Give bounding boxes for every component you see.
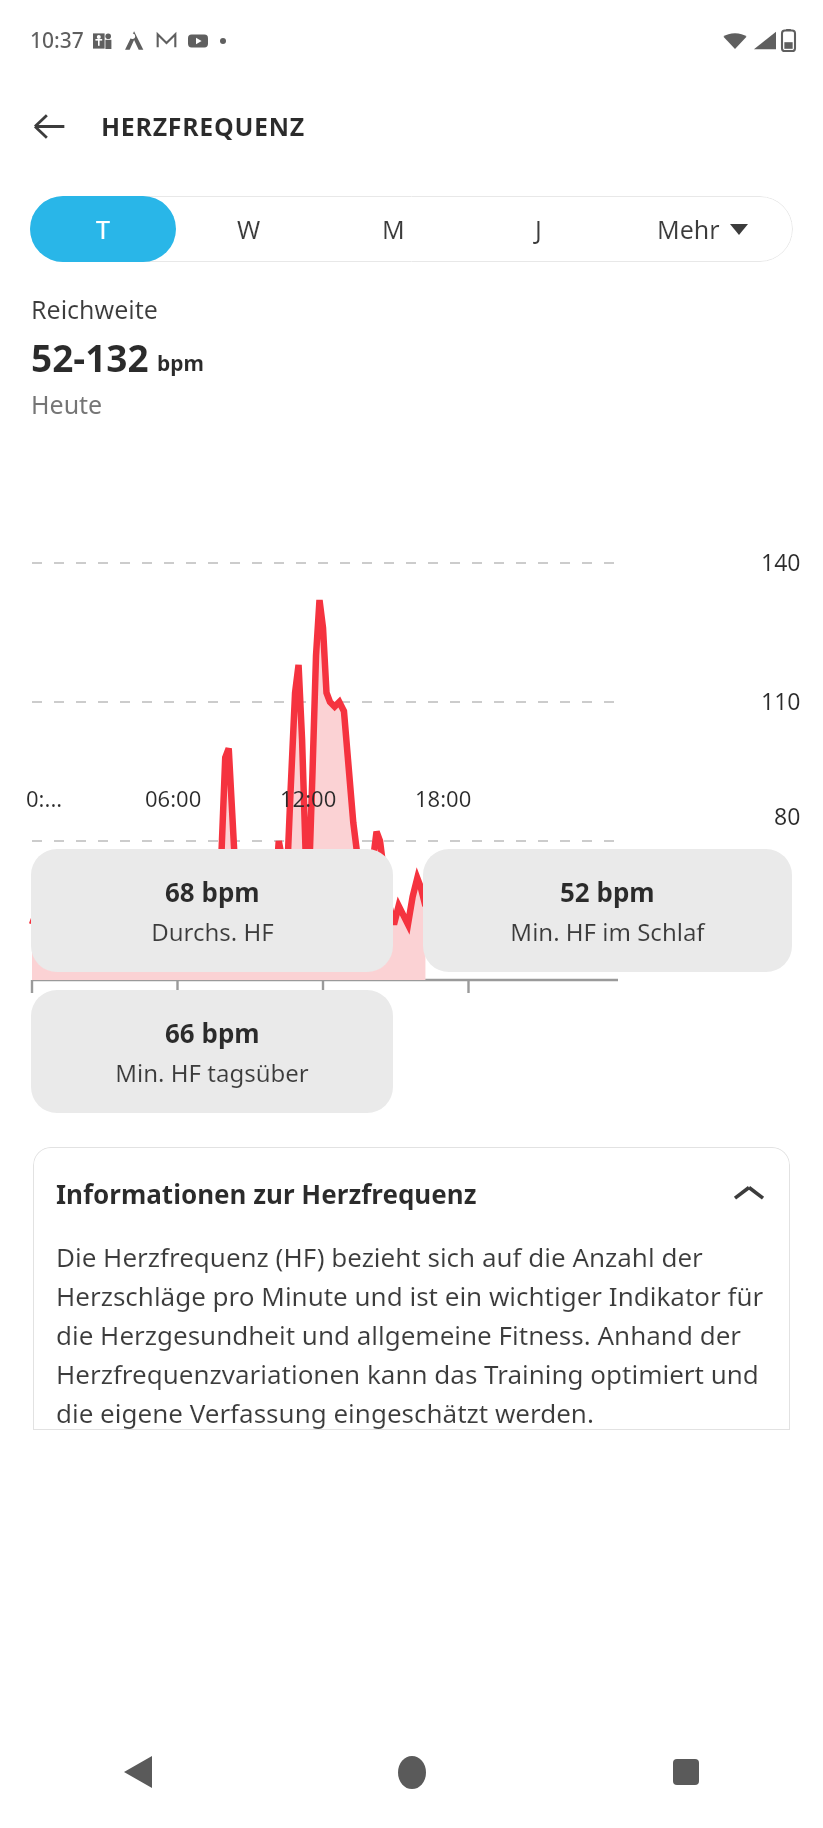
staticText: 68 bpm xyxy=(165,874,260,909)
staticText: 10:37 xyxy=(30,26,84,55)
staticText: 80 xyxy=(774,800,801,831)
button[interactable]: 68 bpm xyxy=(31,849,393,972)
staticText: Durchs. HF xyxy=(151,915,274,948)
staticText: Reichweite xyxy=(31,292,158,326)
button[interactable]: J xyxy=(466,196,611,262)
staticText: 110 xyxy=(761,685,801,716)
staticText: 18:00 xyxy=(415,783,472,813)
staticText: HERZFREQUENZ xyxy=(101,109,306,143)
staticText: Min. HF im Schlaf xyxy=(510,915,705,948)
staticText: bpm xyxy=(157,349,205,378)
button[interactable]: 66 bpm xyxy=(31,990,393,1113)
button[interactable]: 52 bpm xyxy=(423,849,792,972)
staticText: Mehr xyxy=(657,212,720,246)
staticText: Informationen zur Herzfrequenz xyxy=(56,1176,732,1211)
staticText: W xyxy=(237,212,261,246)
button[interactable]: Mehr xyxy=(611,196,793,262)
button[interactable]: Startbildschirm xyxy=(275,1716,549,1828)
button[interactable]: Informationen zur Herzfrequenz xyxy=(33,1147,790,1239)
other: Einklappen xyxy=(732,1176,766,1210)
staticText: T xyxy=(96,212,110,246)
button[interactable]: Zurück xyxy=(18,95,80,157)
staticText: Die Herzfrequenz (HF) bezieht sich auf d… xyxy=(56,1239,774,1430)
staticText: 52 bpm xyxy=(560,874,655,909)
staticText: 66 bpm xyxy=(165,1015,260,1050)
button[interactable]: Zurück xyxy=(0,1716,275,1828)
staticText: M xyxy=(382,212,405,246)
button[interactable]: W xyxy=(176,196,321,262)
staticText: Heute xyxy=(31,387,103,421)
staticText: J xyxy=(535,212,542,246)
button[interactable]: Übersicht xyxy=(549,1716,823,1828)
staticText: 06:00 xyxy=(145,783,202,813)
staticText: 0:... xyxy=(26,783,63,813)
button[interactable]: T xyxy=(30,196,176,262)
staticText: 140 xyxy=(761,546,801,577)
staticText: 12:00 xyxy=(280,783,337,813)
staticText: 52-132 xyxy=(31,332,149,382)
button[interactable]: M xyxy=(321,196,466,262)
staticText: Min. HF tagsüber xyxy=(115,1056,309,1089)
